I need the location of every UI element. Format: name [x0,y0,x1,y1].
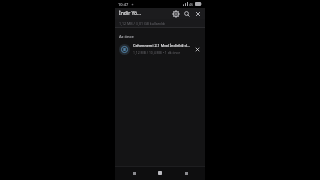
button[interactable]: Recents [179,166,193,180]
button[interactable]: Search [181,8,192,19]
staticText: 46 [189,2,194,7]
button[interactable]: Back [127,166,141,180]
staticText: İndir Yöneticisi [119,10,144,17]
button[interactable]: Cehennemi 2.1 Mod İndirildi dosya a... [115,40,205,58]
button[interactable]: Dismiss [192,44,203,55]
staticText: 1,12 MB / 3,01 GB kullanıldı [119,21,166,26]
button[interactable]: Settings [170,8,181,19]
staticText: 10:47 [118,2,129,7]
staticText: 1,12 MB / 10,4 MB • 1 dk önce [133,50,181,55]
button[interactable]: Close [192,8,203,19]
button[interactable]: Home [153,166,167,180]
staticText: Cehennemi 2.1 Mod İndirildi dosya a... [133,43,190,48]
staticText: Az önce [119,34,134,39]
